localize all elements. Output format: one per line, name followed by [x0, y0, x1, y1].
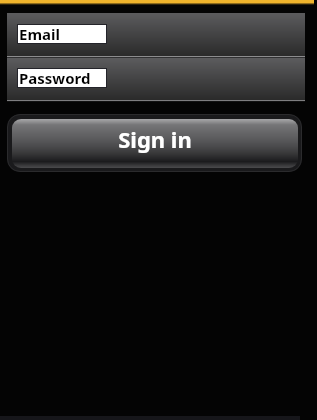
staticText: Email	[19, 24, 60, 42]
staticText: Sign in	[118, 124, 192, 154]
button[interactable]: Password	[7, 58, 305, 100]
button[interactable]: Sign in	[7, 114, 302, 172]
staticText: Password	[19, 68, 91, 86]
button[interactable]: Email	[7, 13, 305, 56]
